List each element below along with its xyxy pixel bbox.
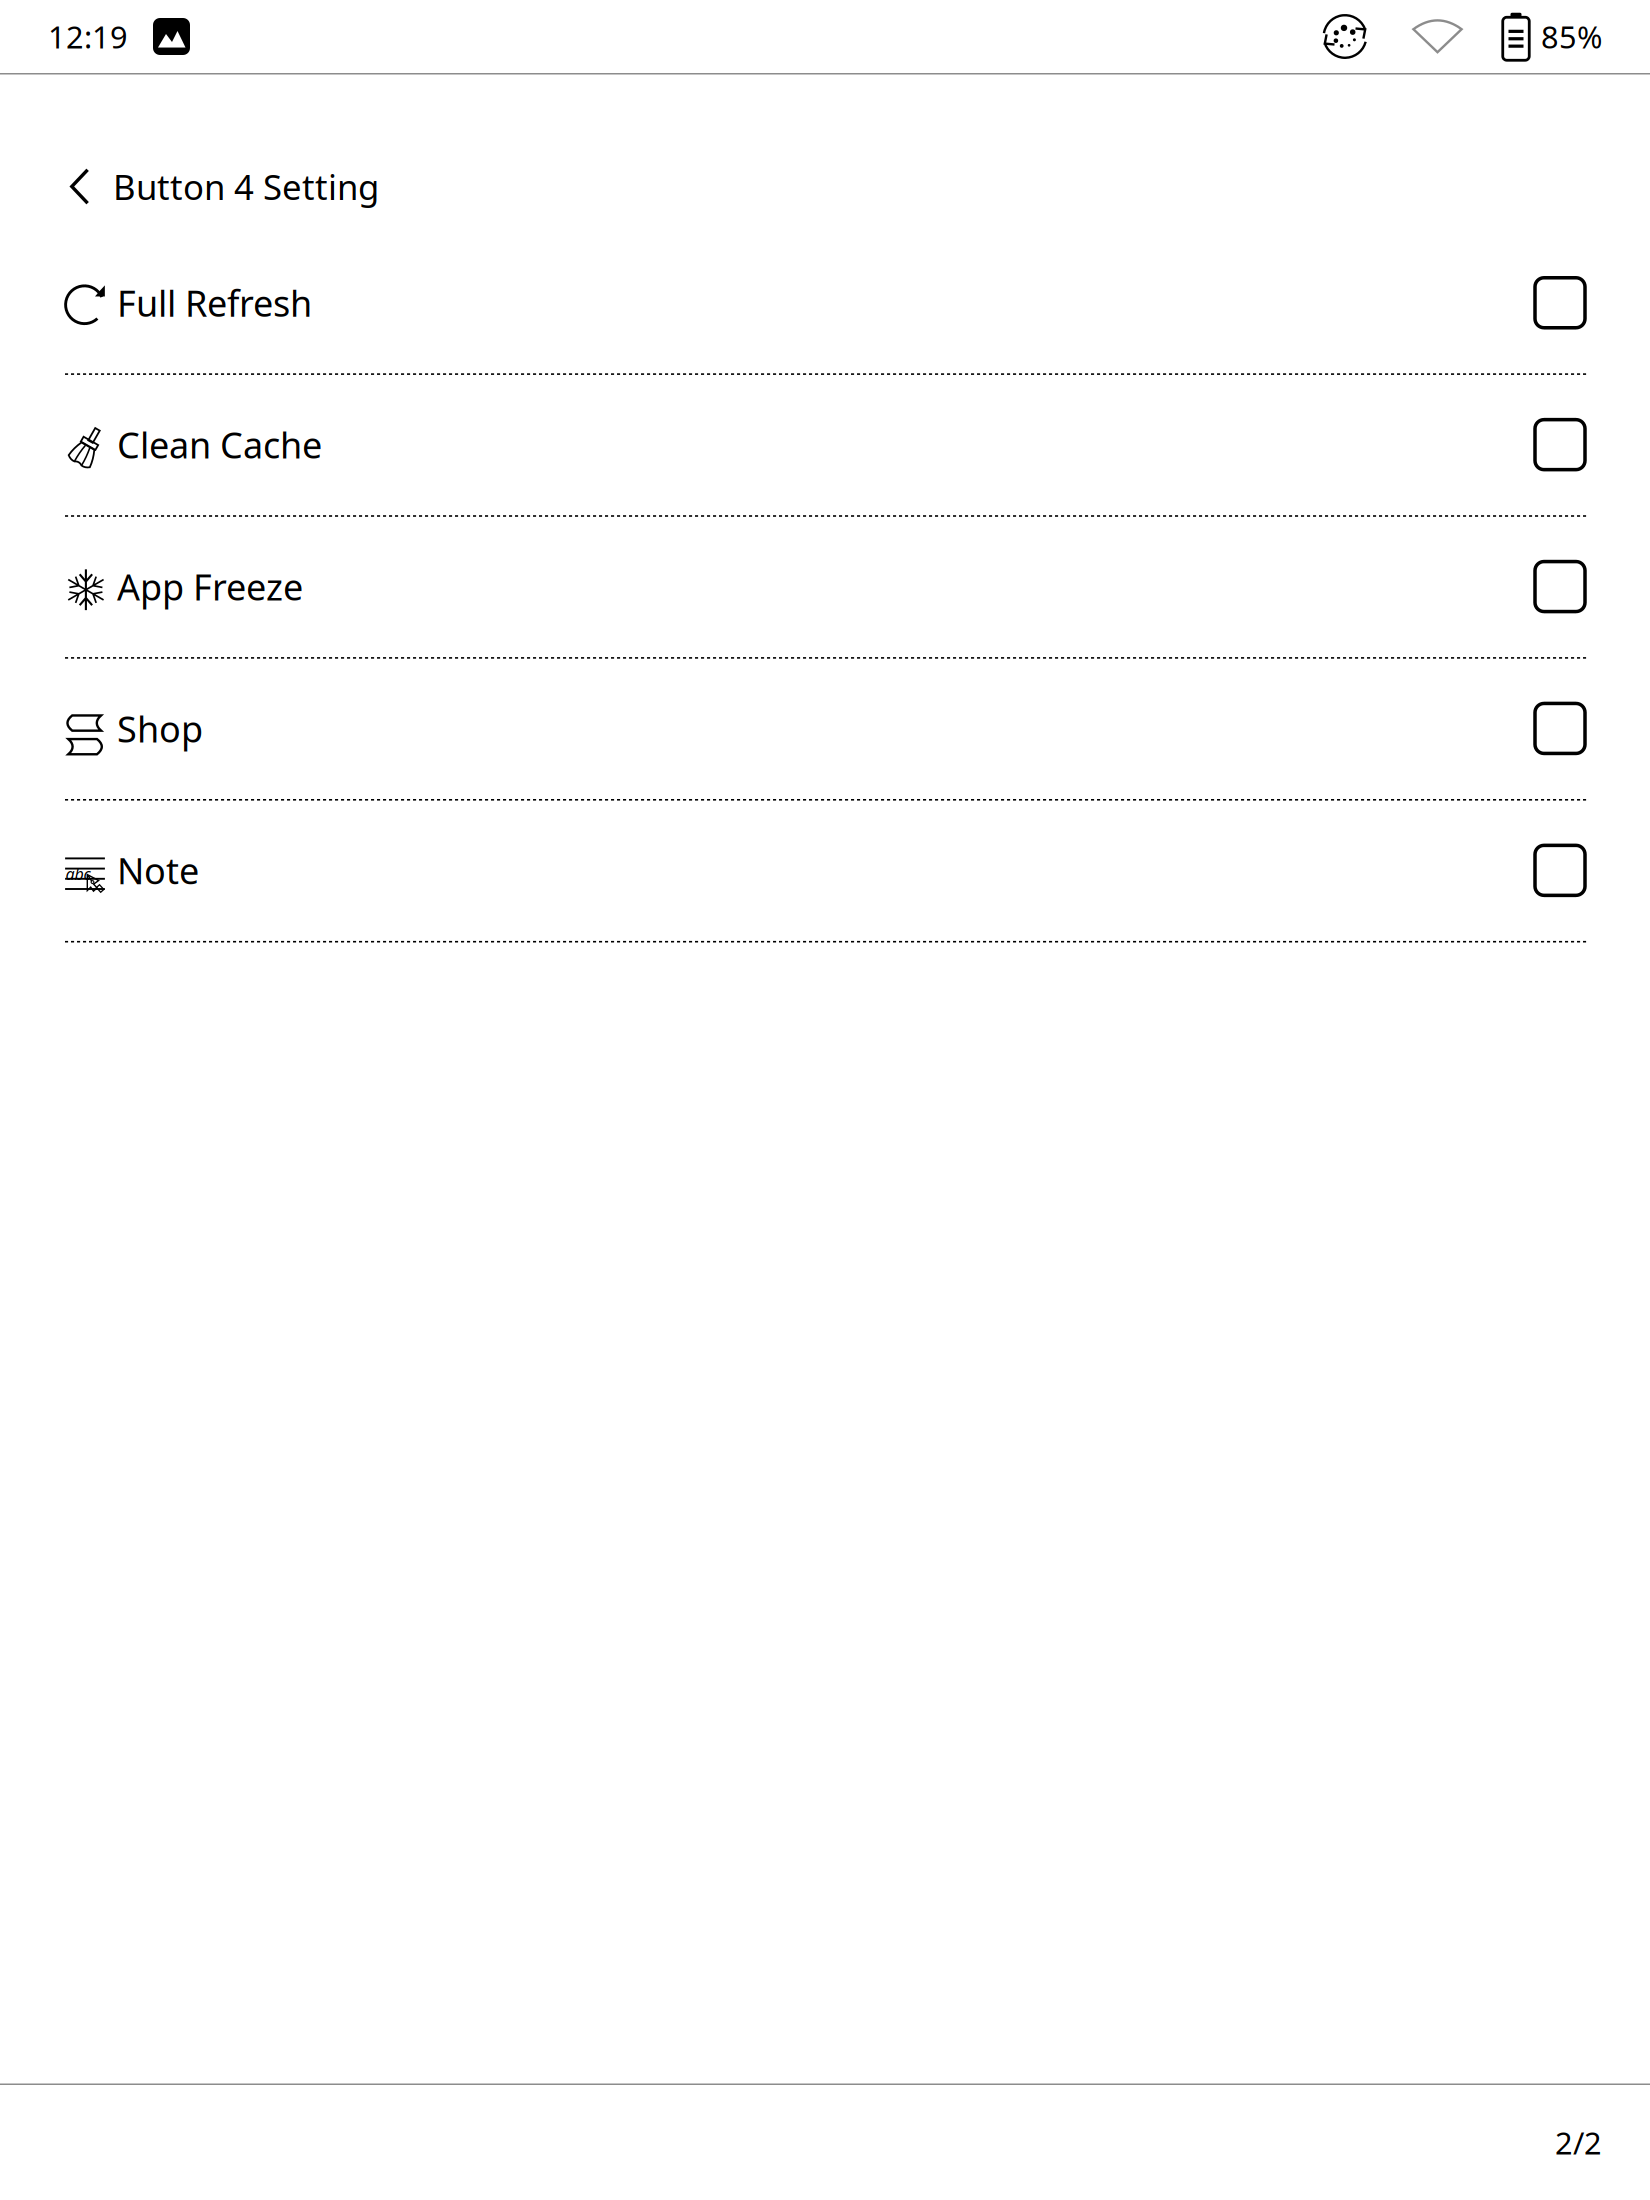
button[interactable]: Button 4 Setting xyxy=(0,142,409,230)
staticText: 12:19 xyxy=(48,16,128,57)
button[interactable]: Shop xyxy=(65,659,1585,798)
staticText: Note xyxy=(117,846,199,894)
staticText: Clean Cache xyxy=(117,421,322,468)
staticText: Shop xyxy=(117,704,203,752)
staticText: Full Refresh xyxy=(117,279,312,327)
staticText: App Freeze xyxy=(117,563,303,610)
staticText: abc xyxy=(65,863,90,884)
button[interactable]: App Freeze xyxy=(65,517,1585,656)
button[interactable]: Clean Cache xyxy=(65,375,1585,514)
staticText: 85% xyxy=(1541,16,1602,57)
staticText: 2/2 xyxy=(1555,2122,1602,2163)
button[interactable]: Full Refresh xyxy=(65,233,1585,372)
button[interactable]: abc xyxy=(65,801,1585,940)
staticText: Button 4 Setting xyxy=(113,163,379,209)
